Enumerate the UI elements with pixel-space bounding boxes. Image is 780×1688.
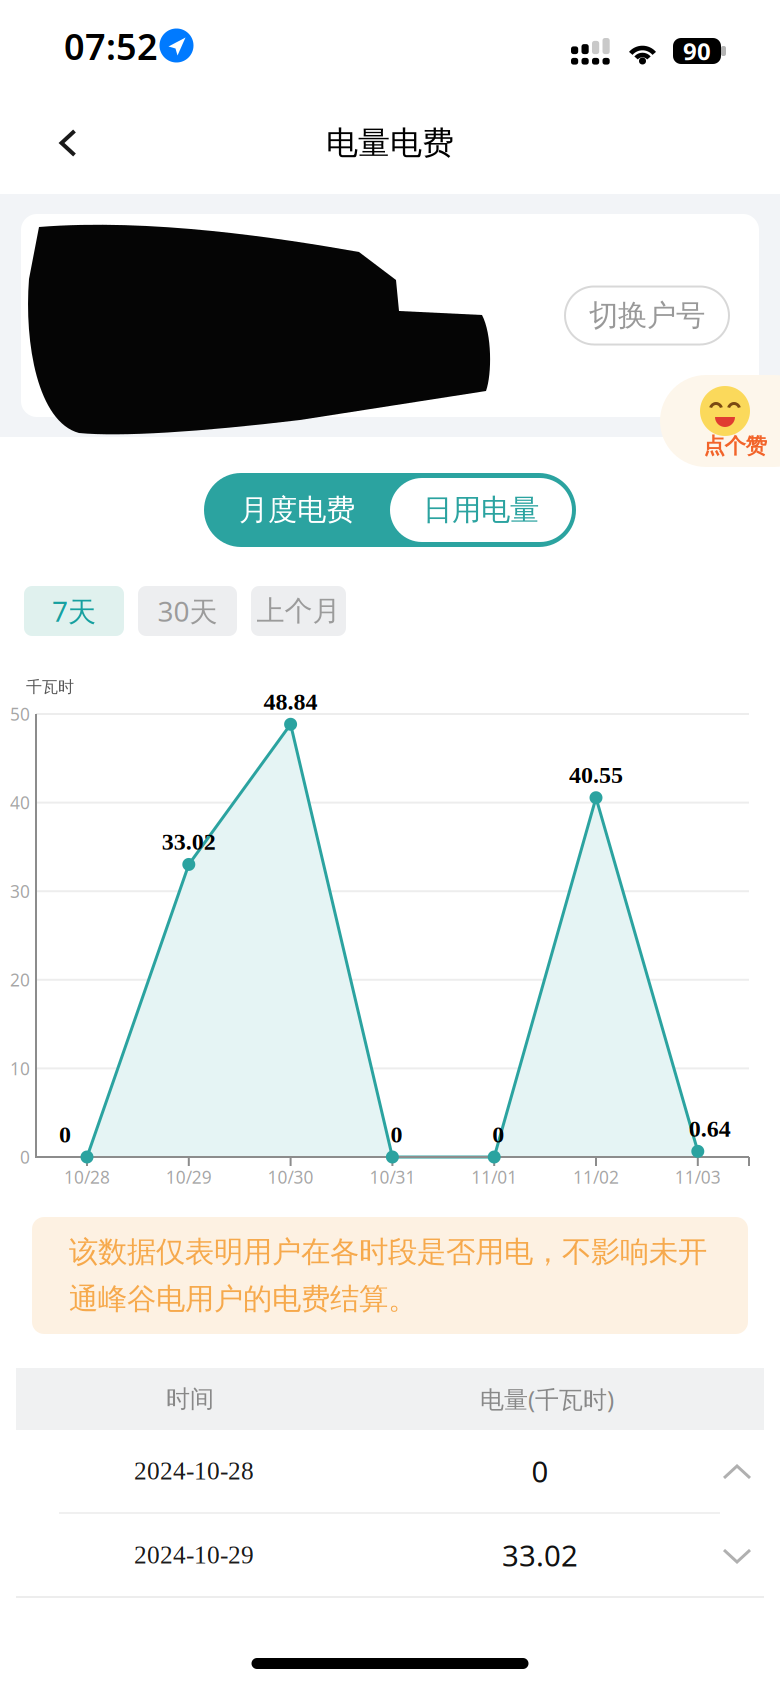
button[interactable]: 切换户号 [565, 286, 729, 344]
button[interactable]: 上个月 [251, 586, 346, 636]
staticText: 月度电费 [239, 492, 355, 528]
staticText: 上个月 [256, 594, 340, 628]
staticText: 该数据仅表明用户在各时段是否用电，不影响未开通峰谷电用户的电费结算。 [69, 1234, 707, 1317]
staticText: 0 [20, 1145, 30, 1168]
staticText: 10/30 [268, 1165, 314, 1188]
staticText: 20 [10, 968, 30, 991]
staticText: 40 [10, 791, 30, 814]
button[interactable]: Back [33, 105, 103, 181]
staticText: 10/29 [166, 1165, 212, 1188]
staticText: 电量电费 [326, 123, 454, 163]
staticText: 切换户号 [589, 297, 705, 333]
staticText: 10/28 [64, 1165, 110, 1188]
staticText: 0 [390, 1121, 402, 1148]
staticText: 2024-10-28 [134, 1457, 254, 1485]
staticText: 0 [59, 1121, 71, 1148]
button[interactable]: 2024-10-29 [0, 1514, 780, 1596]
staticText: 0 [492, 1121, 504, 1148]
button[interactable]: 月度电费 [204, 473, 390, 547]
staticText: 点个赞 [703, 433, 766, 459]
staticText: 30 [10, 880, 30, 903]
button[interactable]: 7天 [24, 586, 124, 636]
staticText: 11/02 [573, 1165, 619, 1188]
button[interactable]: 30天 [138, 586, 237, 636]
staticText: 11/03 [675, 1165, 721, 1188]
staticText: 2024-10-29 [134, 1541, 254, 1569]
button[interactable]: 日用电量 [390, 478, 572, 542]
staticText: 90 [683, 35, 711, 67]
staticText: 千瓦时 [26, 677, 74, 697]
staticText: 40.55 [569, 762, 623, 788]
staticText: 11/01 [471, 1165, 517, 1188]
staticText: 10 [10, 1057, 30, 1080]
staticText: 10/31 [369, 1165, 415, 1188]
staticText: 日用电量 [423, 492, 539, 528]
staticText: 48.84 [264, 688, 318, 715]
staticText: 50 [10, 702, 30, 725]
staticText: 33.02 [162, 828, 216, 855]
staticText: 0 [531, 1451, 548, 1490]
staticText: 0.64 [689, 1115, 731, 1142]
staticText: 30天 [157, 592, 217, 630]
staticText: 7天 [52, 592, 96, 630]
button[interactable]: 点个赞 [660, 375, 780, 467]
staticText: 时间 [166, 1384, 214, 1414]
staticText: 07:52 [64, 22, 158, 70]
staticText: 33.02 [502, 1535, 578, 1574]
button[interactable]: 2024-10-28 [0, 1430, 780, 1512]
staticText: 电量(千瓦时) [480, 1383, 614, 1415]
